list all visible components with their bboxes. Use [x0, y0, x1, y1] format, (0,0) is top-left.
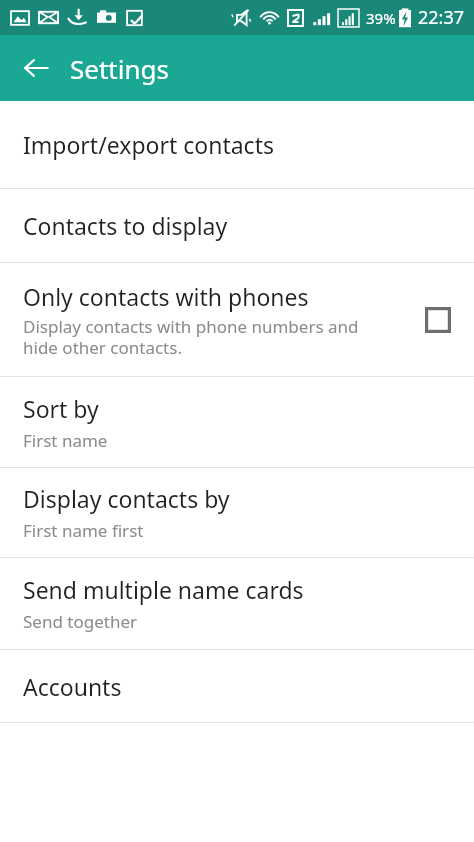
- staticText: Only contacts with phones: [23, 281, 309, 312]
- staticText: Settings: [70, 51, 169, 86]
- staticText: Display contacts with phone numbers and …: [23, 315, 359, 359]
- staticText: Display contacts by: [23, 483, 230, 514]
- button[interactable]: Send multiple name cards: [0, 558, 474, 649]
- staticText: Sort by: [23, 393, 99, 424]
- button[interactable]: Contacts to display: [0, 189, 474, 262]
- staticText: 39%: [366, 8, 396, 28]
- button[interactable]: Sort by: [0, 377, 474, 467]
- button[interactable]: Display contacts by: [0, 468, 474, 557]
- staticText: 22:37: [418, 5, 465, 30]
- staticText: First name first: [23, 519, 144, 542]
- staticText: First name: [23, 429, 108, 452]
- button[interactable]: Back: [12, 44, 60, 92]
- button[interactable]: Accounts: [0, 650, 474, 722]
- staticText: Send together: [23, 610, 138, 633]
- staticText: Import/export contacts: [23, 129, 274, 160]
- staticText: Send multiple name cards: [23, 574, 304, 605]
- staticText: Accounts: [23, 671, 122, 702]
- button[interactable]: Only contacts with phones: [0, 263, 474, 376]
- staticText: Contacts to display: [23, 210, 228, 241]
- button[interactable]: Import/export contacts: [0, 101, 474, 188]
